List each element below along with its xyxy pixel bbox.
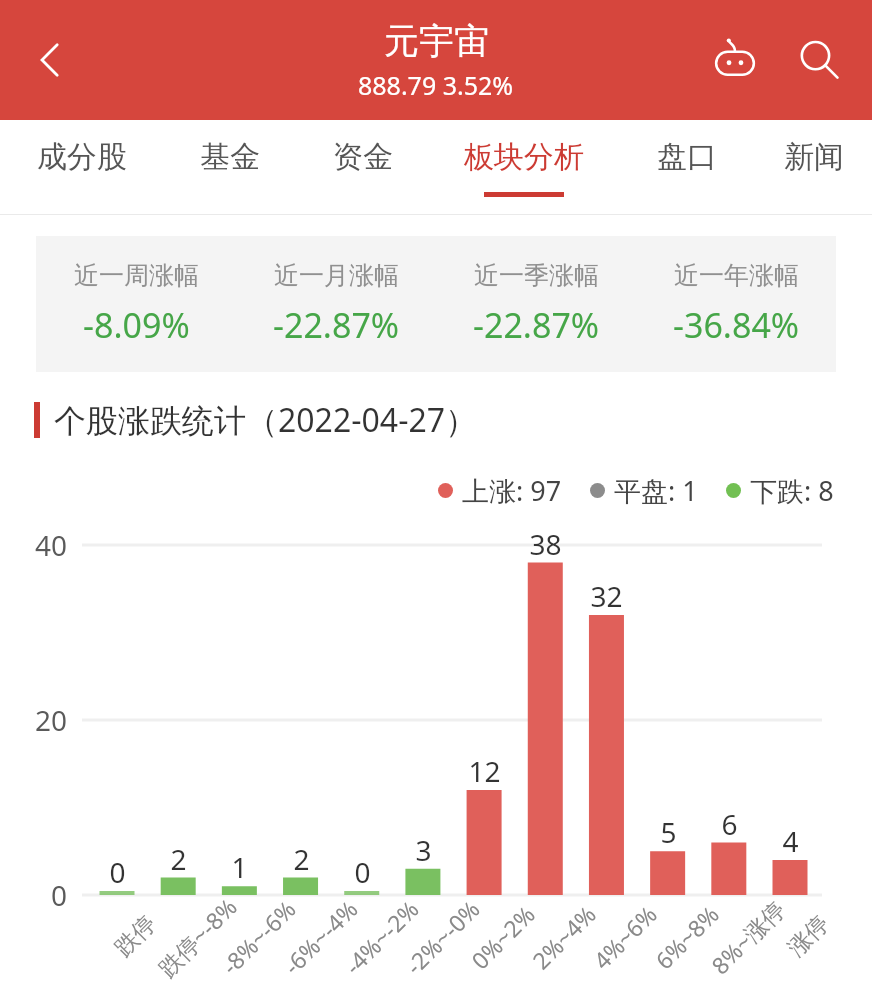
- staticText: 32: [590, 577, 623, 615]
- staticText: 板块分析: [464, 138, 584, 176]
- button[interactable]: 下跌: 8: [726, 472, 834, 509]
- staticText: 20: [35, 701, 68, 739]
- staticText: 跌停: [109, 909, 162, 962]
- staticText: 资金: [333, 138, 393, 176]
- staticText: -8%~-6%: [214, 893, 302, 981]
- button[interactable]: 成分股: [0, 120, 163, 215]
- staticText: 上涨: 97: [462, 472, 562, 509]
- button[interactable]: 盘口: [618, 120, 756, 215]
- staticText: 跌停~-8%: [151, 891, 243, 983]
- button[interactable]: 平盘: 1: [590, 472, 698, 509]
- staticText: -2%~-0%: [398, 893, 486, 981]
- staticText: 1: [231, 848, 248, 886]
- staticText: 5: [660, 813, 677, 851]
- staticText: 近一周涨幅: [74, 260, 199, 291]
- staticText: 涨停: [782, 909, 835, 962]
- staticText: 2: [293, 840, 310, 878]
- staticText: 基金: [200, 138, 260, 176]
- staticText: 12: [468, 752, 501, 790]
- staticText: 4%~6%: [586, 898, 663, 975]
- staticText: 3: [415, 831, 432, 869]
- staticText: 近一季涨幅: [474, 260, 599, 291]
- button[interactable]: 新闻: [756, 120, 872, 215]
- staticText: -22.87%: [273, 302, 400, 348]
- staticText: 0: [354, 853, 371, 891]
- staticText: 8%~涨停: [704, 893, 791, 980]
- staticText: 0: [51, 876, 68, 914]
- staticText: -4%~-2%: [337, 893, 425, 981]
- staticText: 6%~8%: [648, 898, 725, 975]
- staticText: 888.79 3.52%: [358, 68, 514, 102]
- button[interactable]: 板块分析: [429, 120, 618, 215]
- staticText: 近一年涨幅: [674, 260, 799, 291]
- button[interactable]: Search: [782, 23, 856, 97]
- staticText: 个股涨跌统计（2022-04-27）: [54, 398, 478, 442]
- staticText: 近一月涨幅: [274, 260, 399, 291]
- button[interactable]: Back: [12, 22, 88, 98]
- staticText: 成分股: [37, 138, 127, 176]
- staticText: -8.09%: [83, 302, 190, 348]
- staticText: -22.87%: [473, 302, 600, 348]
- staticText: -6%~-4%: [276, 893, 364, 981]
- staticText: 下跌: 8: [750, 472, 834, 509]
- staticText: 0: [109, 853, 126, 891]
- staticText: 2%~4%: [525, 898, 602, 975]
- staticText: 38: [529, 525, 562, 563]
- staticText: 6: [721, 805, 738, 843]
- staticText: 盘口: [657, 138, 717, 176]
- button[interactable]: Assistant: [698, 23, 772, 97]
- staticText: 0%~2%: [464, 898, 541, 975]
- staticText: 平盘: 1: [614, 472, 698, 509]
- button[interactable]: 基金: [163, 120, 296, 215]
- staticText: 2: [170, 840, 187, 878]
- button[interactable]: 资金: [296, 120, 429, 215]
- staticText: 40: [35, 526, 68, 564]
- staticText: 元宇宙: [384, 19, 489, 63]
- staticText: 4: [782, 822, 799, 860]
- button[interactable]: 上涨: 97: [438, 472, 562, 509]
- staticText: -36.84%: [673, 302, 800, 348]
- staticText: 新闻: [784, 138, 844, 176]
